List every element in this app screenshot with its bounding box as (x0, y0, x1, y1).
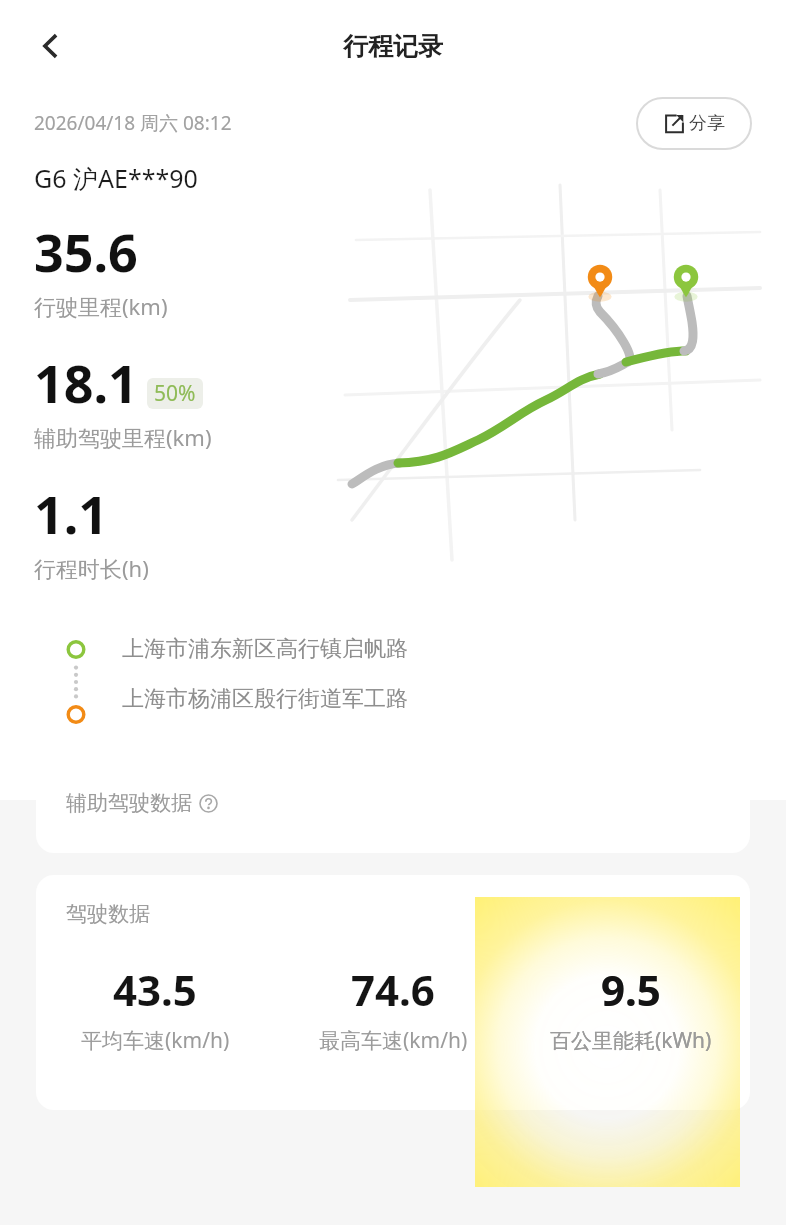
staticText: 18.1 (34, 347, 138, 418)
staticText: 分享 (689, 112, 725, 135)
staticText: 百公里能耗(kWh) (550, 1026, 712, 1055)
staticText: 辅助驾驶里程(km) (34, 422, 212, 452)
staticText: 9.5 (601, 961, 661, 1018)
button[interactable]: 43.5 (36, 961, 274, 1055)
staticText: 辅助驾驶数据 (66, 790, 192, 816)
button[interactable]: 9.5 (512, 961, 750, 1055)
button[interactable]: 辅助驾驶数据 (36, 753, 750, 853)
staticText: 百公里能耗(kWh) (550, 1026, 712, 1055)
staticText: 行程时长(h) (34, 553, 149, 583)
staticText: 9.5 (601, 961, 661, 1018)
staticText: 平均车速(km/h) (81, 1026, 230, 1055)
staticText: 上海市杨浦区殷行街道军工路 (122, 685, 408, 713)
staticText: 74.6 (351, 961, 435, 1018)
staticText: 行程记录 (343, 31, 443, 62)
staticText: 50% (154, 379, 196, 408)
staticText: G6 沪AE***90 (34, 161, 198, 195)
staticText: 最高车速(km/h) (319, 1026, 468, 1055)
staticText: 2026/04/18 周六 08:12 (34, 110, 232, 136)
staticText: 行驶里程(km) (34, 291, 168, 321)
staticText: 35.6 (34, 216, 138, 287)
staticText: 1.1 (34, 478, 109, 549)
staticText: 驾驶数据 (66, 901, 150, 927)
staticText: 上海市浦东新区高行镇启帆路 (122, 635, 408, 663)
button[interactable]: 分享 (636, 97, 752, 150)
button[interactable]: 驾驶数据 (36, 875, 750, 1110)
button[interactable]: 9.5 (512, 961, 750, 1055)
button[interactable]: 74.6 (274, 961, 512, 1055)
staticText: 43.5 (113, 961, 197, 1018)
button[interactable]: Back (22, 18, 78, 74)
